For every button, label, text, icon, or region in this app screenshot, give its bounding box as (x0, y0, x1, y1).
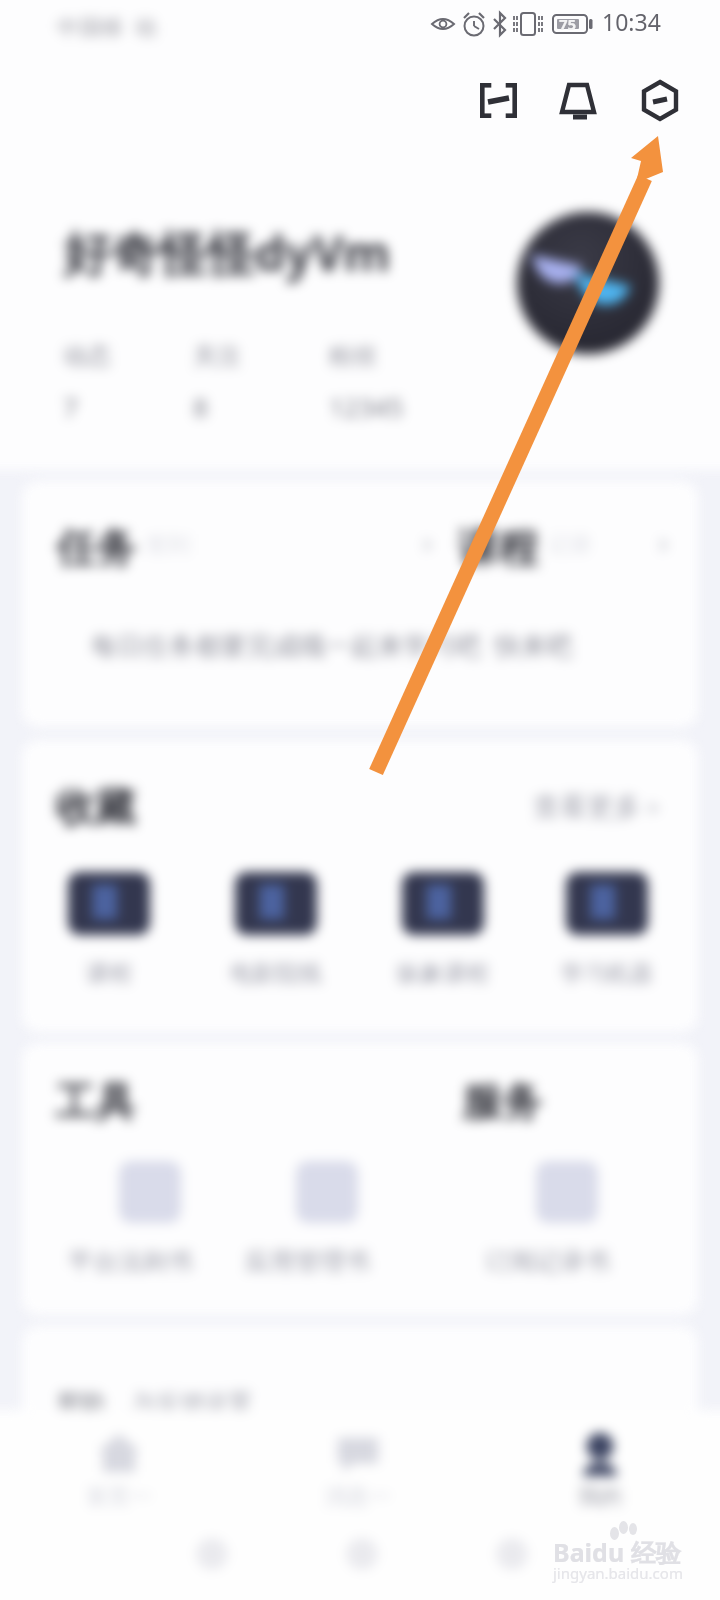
button[interactable]: 粉丝 (329, 341, 404, 424)
staticText: Baidu 经验 (553, 1535, 681, 1569)
staticText: 平台法则书 (68, 1246, 193, 1277)
button[interactable]: More options (630, 70, 694, 134)
button[interactable]: 应用管理书 (232, 1161, 422, 1291)
button[interactable]: 学习机器 (532, 872, 682, 988)
staticText: 应用管理书 (245, 1246, 370, 1277)
button[interactable]: Scan code (467, 70, 531, 134)
staticText: 动态 (63, 341, 111, 371)
button[interactable]: 课程 (34, 872, 184, 988)
staticText: 查看更多 (533, 790, 641, 824)
staticText: 课程 (458, 523, 538, 567)
staticText: 服务 (462, 1077, 542, 1127)
staticText: 8 (193, 389, 208, 424)
staticText: 收藏 (55, 782, 135, 832)
button[interactable]: 关注 (193, 341, 241, 424)
button[interactable]: 任务 (56, 523, 437, 567)
staticText: 7 (63, 389, 78, 424)
staticText: 12345 (329, 389, 404, 424)
button[interactable]: 订阅记录书 (472, 1161, 662, 1291)
button[interactable]: 电影院线 (201, 872, 351, 988)
staticText: 课程 (86, 959, 132, 988)
button[interactable]: 平台法则书 (55, 1161, 245, 1291)
staticText: 10:34 (602, 6, 661, 37)
button[interactable]: 首页一 (49, 1429, 189, 1511)
button[interactable]: 纵象课程 (368, 872, 518, 988)
staticText: 帮助 (57, 1388, 105, 1418)
staticText: 订阅记录书 (485, 1246, 610, 1277)
button[interactable]: Back (190, 1532, 234, 1576)
button[interactable]: Home (340, 1532, 384, 1576)
button[interactable]: 课程 (458, 523, 673, 567)
staticText: 粉丝 (329, 341, 377, 371)
button[interactable]: 我的 (530, 1429, 670, 1511)
staticText: 消息一 (325, 1483, 391, 1511)
staticText: 任务 (56, 523, 136, 567)
staticText: 好奇怪怪dyVm (63, 220, 391, 286)
staticText: 中国移 动 (57, 11, 157, 41)
staticText: 学习机器 (561, 959, 653, 988)
button[interactable]: 消息一 (288, 1429, 428, 1511)
button[interactable]: Profile avatar (517, 212, 659, 354)
staticText: 每日任务都要完成哦一起来学习吧 快来吧 (91, 627, 573, 663)
staticText: 纵象课程 (397, 959, 489, 988)
button[interactable]: Notifications (548, 70, 612, 134)
staticText: > (647, 792, 660, 822)
staticText: 工具 (55, 1077, 135, 1127)
button[interactable]: Recents (490, 1532, 534, 1576)
staticText: 我的 (578, 1483, 622, 1511)
staticText: 与反馈设置 (132, 1388, 252, 1418)
staticText: 75 (559, 14, 577, 34)
button[interactable]: 动态 (63, 341, 111, 424)
button[interactable]: 查看更多 (533, 790, 660, 824)
staticText: jingyan.baidu.com (553, 1563, 683, 1583)
staticText: 关注 (193, 341, 241, 371)
staticText: 电影院线 (230, 959, 322, 988)
staticText: 首页一 (86, 1483, 152, 1511)
